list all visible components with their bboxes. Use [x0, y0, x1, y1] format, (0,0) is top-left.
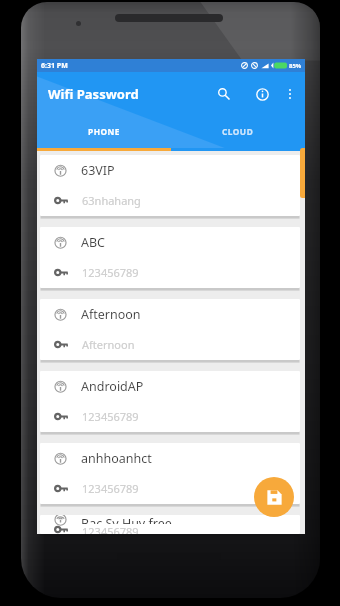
button[interactable]: Afternoon [40, 299, 300, 360]
staticText: 63nhahang [82, 193, 141, 208]
button[interactable]: AndroidAP [40, 371, 300, 432]
button[interactable]: CLOUD [171, 115, 305, 148]
staticText: 6:31 PM [41, 61, 68, 71]
staticText: 123456789 [82, 524, 139, 534]
staticText: 123456789 [82, 409, 139, 424]
staticText: 123456789 [82, 265, 139, 280]
staticText: anhhoanhct [81, 450, 152, 467]
button[interactable]: Scroll [300, 148, 305, 198]
button[interactable]: Search [211, 81, 237, 107]
button[interactable]: Bac Sy Huy free [40, 515, 300, 534]
staticText: 85% [289, 62, 302, 70]
button[interactable]: anhhoanhct [40, 443, 300, 504]
staticText: PHONE [88, 126, 120, 137]
staticText: Bac Sy Huy free [81, 515, 172, 524]
button[interactable]: ABC [40, 227, 300, 288]
staticText: CLOUD [222, 126, 254, 137]
staticText: 63VIP [81, 162, 115, 179]
button[interactable]: Info [249, 81, 275, 107]
button[interactable]: Save passwords [254, 477, 294, 517]
button[interactable]: More options [279, 83, 301, 105]
staticText: Afternoon [82, 337, 135, 352]
staticText: AndroidAP [81, 378, 144, 395]
staticText: 123456789 [82, 481, 139, 496]
button[interactable]: PHONE [37, 115, 171, 148]
staticText: ABC [81, 234, 106, 251]
button[interactable]: 63VIP [40, 155, 300, 216]
staticText: Wifi Password [48, 85, 139, 103]
staticText: Afternoon [81, 306, 141, 323]
